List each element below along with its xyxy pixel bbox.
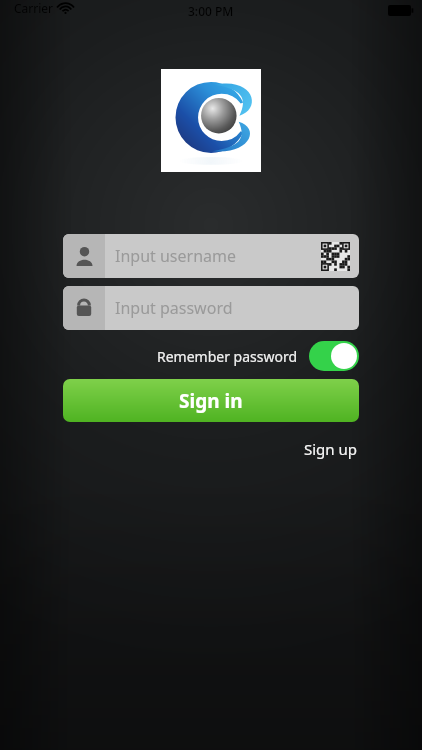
staticText: Carrier	[14, 0, 54, 16]
button[interactable]: Input username	[63, 234, 359, 278]
staticText: Remember password	[157, 347, 298, 366]
staticText: Input password	[115, 297, 359, 319]
button[interactable]: Remember password	[157, 341, 359, 371]
button[interactable]: Input password	[63, 286, 359, 330]
button[interactable]: Scan QR code	[320, 241, 350, 271]
button[interactable]: Sign in	[63, 379, 359, 422]
button[interactable]: Sign up	[302, 436, 359, 462]
staticText: Input username	[115, 245, 320, 267]
other: Remember password toggle, on	[309, 341, 359, 371]
staticText: Sign in	[179, 388, 243, 414]
staticText: 3:00 PM	[188, 3, 234, 19]
staticText: Sign up	[304, 439, 357, 459]
